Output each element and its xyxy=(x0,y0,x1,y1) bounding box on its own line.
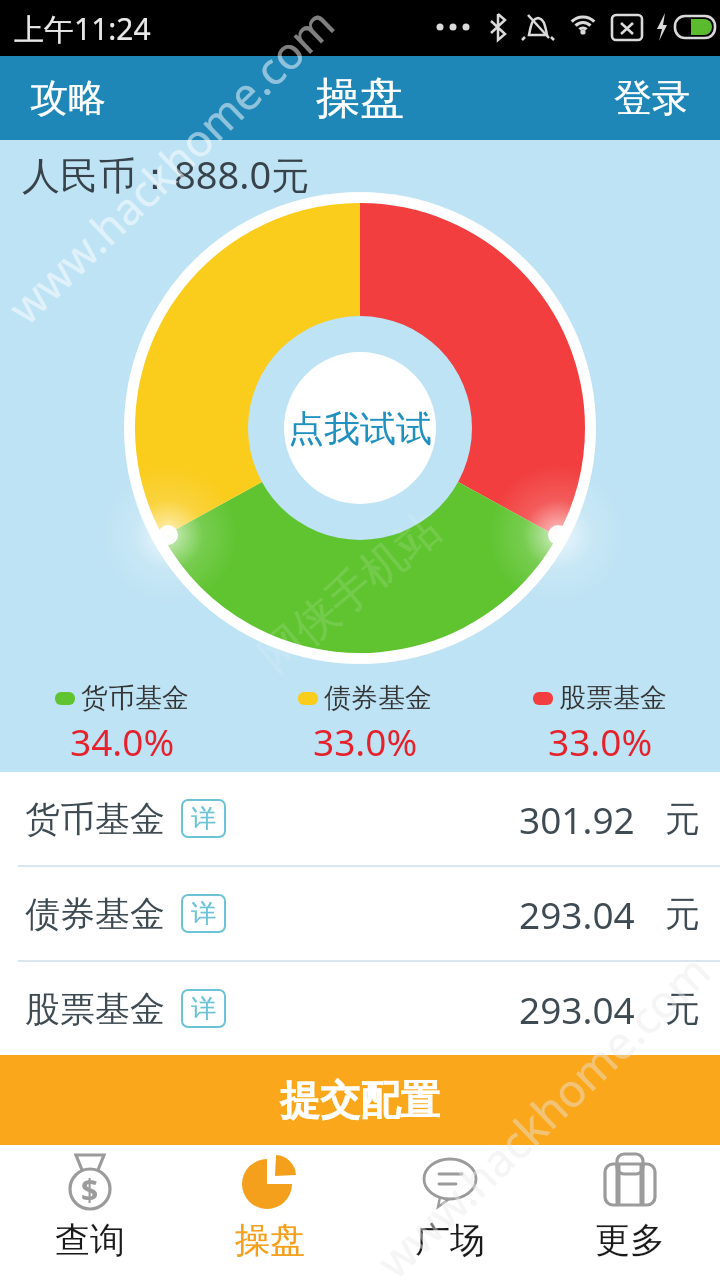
staticText: $ xyxy=(81,1169,99,1210)
staticText: 33.0% xyxy=(548,716,653,762)
staticText: 详 xyxy=(191,993,216,1024)
staticText: 广场 xyxy=(415,1218,485,1262)
button[interactable]: $ xyxy=(0,1145,180,1280)
button[interactable]: 广场 xyxy=(360,1145,540,1280)
staticText: 操盘 xyxy=(235,1218,305,1262)
button[interactable]: 登录 xyxy=(614,74,690,122)
staticText: www.hackhome.com xyxy=(0,0,346,336)
button[interactable]: 更多 xyxy=(540,1145,720,1280)
staticText: 293.04 xyxy=(519,984,635,1034)
staticText: 点我试试 xyxy=(288,406,432,451)
staticText: 网侠手机站 xyxy=(248,501,452,684)
button[interactable]: 详 xyxy=(191,993,216,1024)
staticText: 查询 xyxy=(55,1218,125,1262)
staticText: 301.92 xyxy=(519,794,635,844)
staticText: 293.04 xyxy=(519,889,635,939)
button[interactable]: 详 xyxy=(191,803,216,834)
staticText: 人民币：888.0元 xyxy=(22,148,310,200)
staticText: 债券基金 xyxy=(324,681,432,715)
button[interactable]: 攻略 xyxy=(30,74,106,122)
button[interactable]: 提交配置 xyxy=(0,1055,720,1145)
staticText: 货币基金 xyxy=(81,681,189,715)
staticText: 攻略 xyxy=(30,74,106,122)
staticText: 详 xyxy=(191,898,216,929)
staticText: 股票基金 xyxy=(559,681,667,715)
staticText: 货币基金 xyxy=(25,797,165,841)
staticText: 元 xyxy=(665,987,700,1031)
button[interactable]: 详 xyxy=(191,898,216,929)
staticText: 元 xyxy=(665,797,700,841)
staticText: 元 xyxy=(665,892,700,936)
staticText: 详 xyxy=(191,803,216,834)
staticText: 登录 xyxy=(614,74,690,122)
staticText: 上午11:24 xyxy=(14,8,151,49)
button[interactable]: 点我试试 xyxy=(284,352,436,504)
staticText: 33.0% xyxy=(313,716,418,762)
staticText: 股票基金 xyxy=(25,987,165,1031)
staticText: 债券基金 xyxy=(25,892,165,936)
button[interactable]: 操盘 xyxy=(316,71,404,126)
staticText: 34.0% xyxy=(70,716,175,762)
staticText: 更多 xyxy=(595,1218,665,1262)
button[interactable]: 股票基金 xyxy=(0,962,720,1055)
button[interactable]: 货币基金 xyxy=(0,772,720,865)
staticText: 提交配置 xyxy=(280,1075,440,1125)
staticText: 操盘 xyxy=(316,71,404,126)
button[interactable]: 操盘 xyxy=(180,1145,360,1280)
staticText: www.hackhome.com xyxy=(363,940,720,1280)
button[interactable]: 债券基金 xyxy=(0,867,720,960)
